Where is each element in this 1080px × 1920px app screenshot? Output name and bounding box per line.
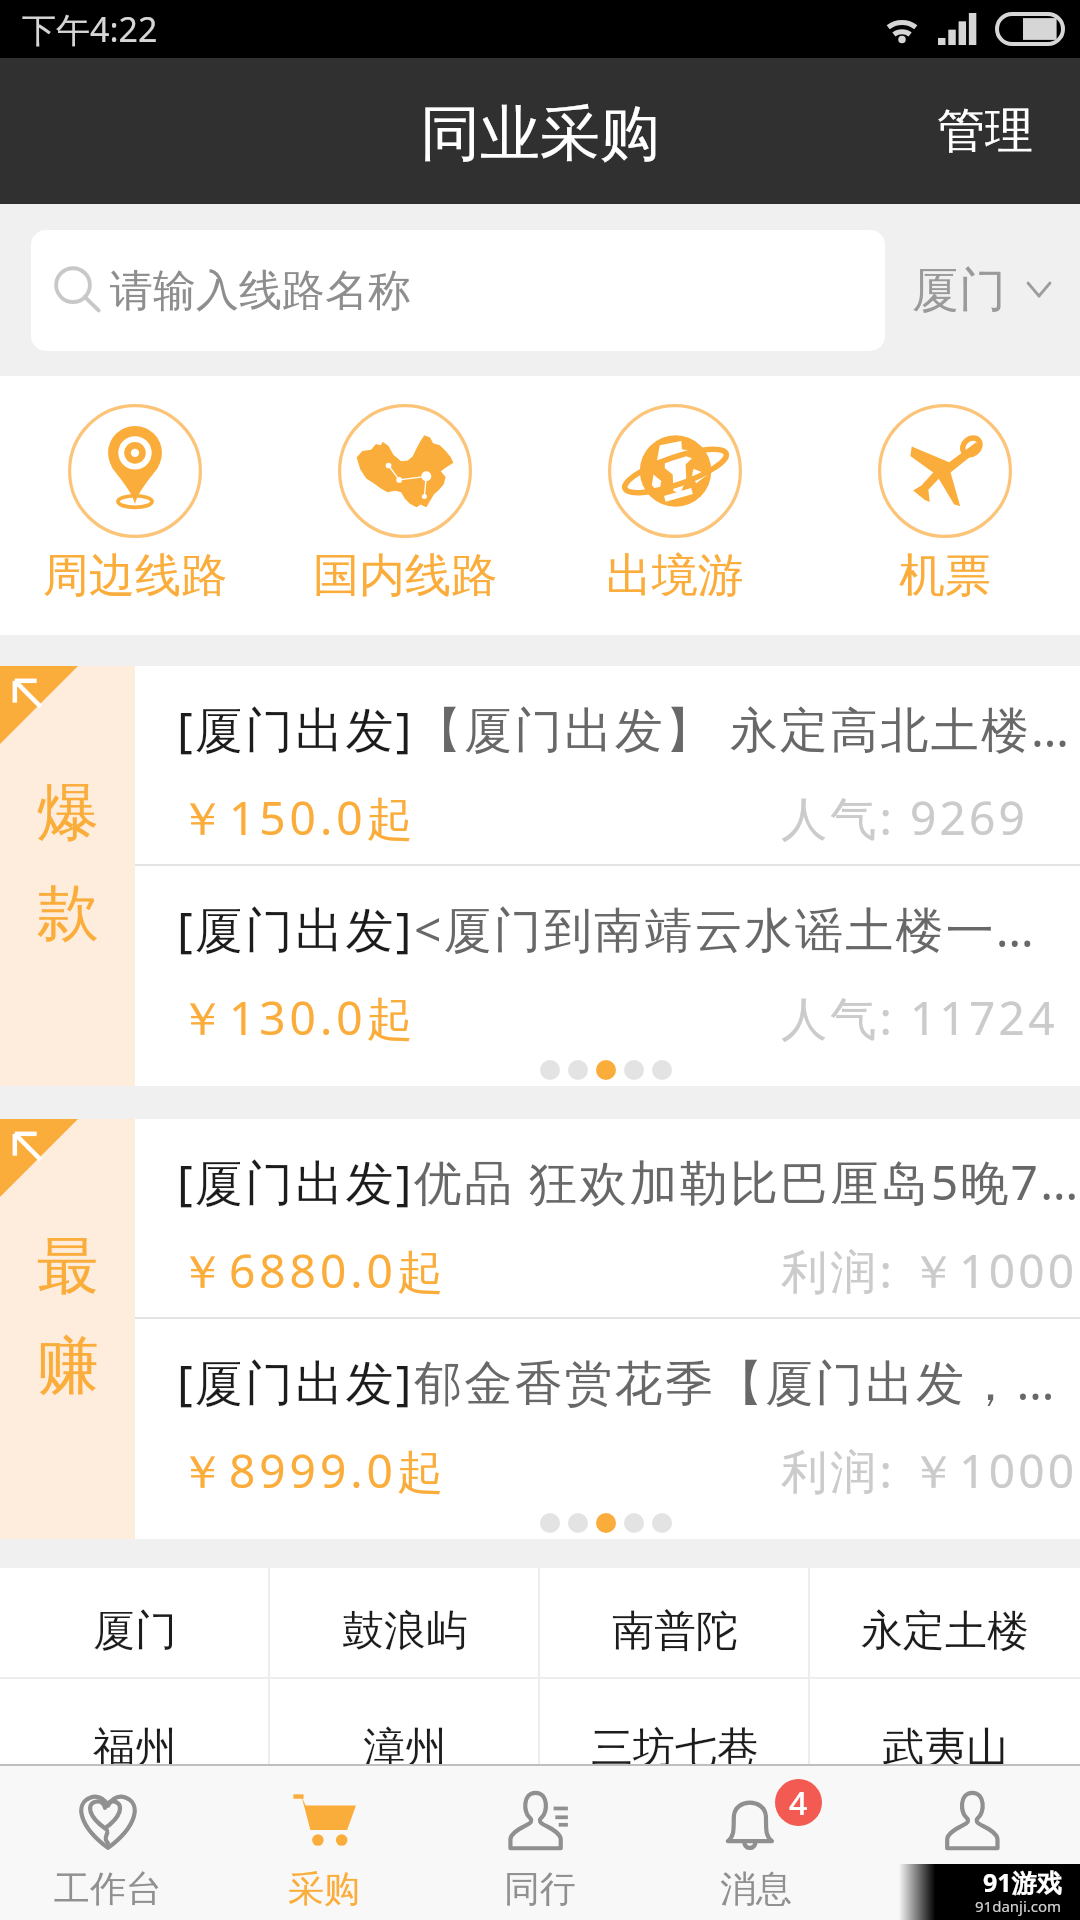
button[interactable]: 管理: [903, 58, 1080, 204]
staticText: 【厦门出发】 永定高北土楼…: [414, 696, 1072, 762]
staticText: 91游戏: [983, 1865, 1062, 1899]
button[interactable]: 鼓浪屿: [270, 1568, 540, 1677]
button[interactable]: 采购: [216, 1766, 432, 1920]
staticText: 永定土楼: [861, 1605, 1029, 1658]
staticText: [厦门出发]: [177, 1149, 414, 1215]
staticText: 武夷山: [882, 1722, 1008, 1775]
staticText: ￥6880.0起: [179, 1239, 447, 1302]
staticText: 工作台: [54, 1866, 162, 1911]
button[interactable]: 国内线路: [270, 376, 540, 635]
staticText: 4: [789, 1781, 808, 1825]
staticText: 人气: 11724: [781, 986, 1058, 1049]
button[interactable]: 福州: [0, 1679, 270, 1809]
staticText: 同行: [504, 1866, 576, 1911]
staticText: 福州: [93, 1722, 177, 1775]
button[interactable]: 选择城市: [892, 204, 1080, 376]
staticText: 利润: ￥1000: [781, 1439, 1078, 1502]
staticText: <厦门到南靖云水谣土楼一…: [414, 896, 1037, 962]
button[interactable]: 出境游: [540, 376, 810, 635]
staticText: 漳州: [363, 1722, 447, 1775]
staticText: 厦门: [93, 1605, 177, 1658]
button[interactable]: 搜索线路: [31, 230, 885, 351]
staticText: 款: [37, 874, 99, 952]
button[interactable]: 机票: [810, 376, 1080, 635]
staticText: [厦门出发]: [177, 896, 414, 962]
staticText: 91danji.com: [975, 1896, 1062, 1916]
button[interactable]: 同行: [432, 1766, 648, 1920]
staticText: 三坊七巷: [591, 1722, 759, 1775]
staticText: 请输入线路名称: [110, 264, 411, 318]
staticText: 南普陀: [612, 1605, 738, 1658]
staticText: 优品 狂欢加勒比巴厘岛5晚7…: [414, 1149, 1080, 1215]
staticText: [厦门出发]: [177, 1349, 414, 1415]
button[interactable]: 南普陀: [540, 1568, 810, 1677]
button[interactable]: 工作台: [0, 1766, 216, 1920]
button[interactable]: 漳州: [270, 1679, 540, 1809]
staticText: 下午4:22: [22, 6, 158, 52]
button[interactable]: 最赚: [0, 1119, 135, 1539]
staticText: 郁金香赏花季【厦门出发，…: [414, 1349, 1057, 1415]
staticText: 利润: ￥1000: [781, 1239, 1078, 1302]
button[interactable]: [厦门出发]: [135, 866, 1080, 1064]
staticText: 鼓浪屿: [342, 1605, 468, 1658]
staticText: ￥130.0起: [179, 986, 417, 1049]
button[interactable]: 三坊七巷: [540, 1679, 810, 1809]
staticText: 赚: [37, 1327, 99, 1405]
staticText: 周边线路: [43, 547, 227, 605]
button[interactable]: 武夷山: [810, 1679, 1080, 1809]
staticText: 出境游: [606, 547, 744, 605]
button[interactable]: 我的: [864, 1766, 1080, 1920]
staticText: [厦门出发]: [177, 696, 414, 762]
staticText: ￥8999.0起: [179, 1439, 447, 1502]
staticText: 国内线路: [313, 547, 497, 605]
button[interactable]: [厦门出发]: [135, 1119, 1080, 1317]
staticText: ￥150.0起: [179, 786, 417, 849]
staticText: 最: [37, 1227, 99, 1305]
staticText: 管理: [937, 101, 1033, 161]
staticText: 采购: [288, 1866, 360, 1911]
staticText: 同业采购: [420, 96, 660, 172]
button[interactable]: 爆款: [0, 666, 135, 1086]
button[interactable]: [厦门出发]: [135, 1319, 1080, 1517]
button[interactable]: [厦门出发]: [135, 666, 1080, 864]
staticText: 人气: 9269: [781, 786, 1029, 849]
button[interactable]: 永定土楼: [810, 1568, 1080, 1677]
staticText: 爆: [37, 774, 99, 852]
button[interactable]: 消息: [648, 1766, 864, 1920]
button[interactable]: 周边线路: [0, 376, 270, 635]
button[interactable]: 厦门: [0, 1568, 270, 1677]
staticText: 厦门: [912, 261, 1006, 320]
staticText: 消息: [720, 1866, 792, 1911]
staticText: 机票: [899, 547, 991, 605]
